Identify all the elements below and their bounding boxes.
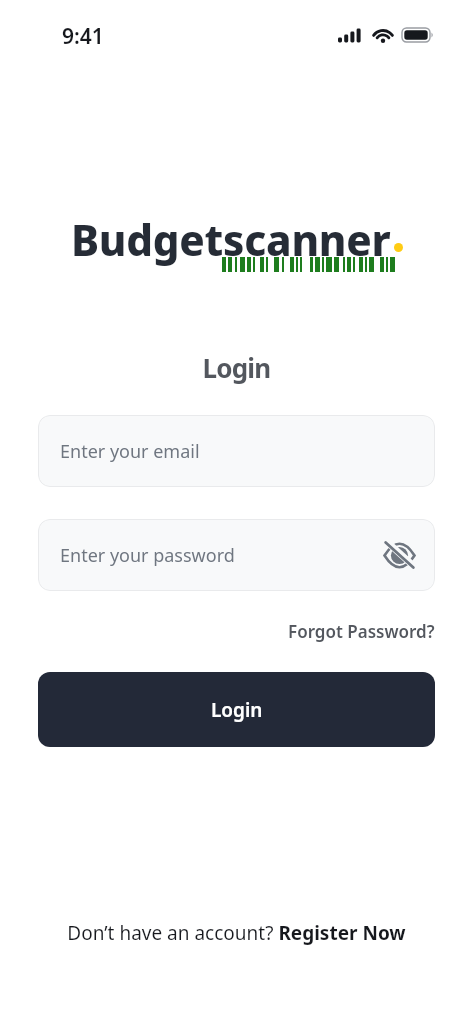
staticText: Enter your password <box>60 543 235 568</box>
staticText: Login <box>211 697 263 723</box>
staticText: Login <box>0 350 473 385</box>
button[interactable]: Enter your password <box>38 519 435 591</box>
staticText: Enter your email <box>60 439 200 464</box>
button[interactable]: Login <box>38 672 435 747</box>
button[interactable]: Enter your email <box>38 415 435 487</box>
staticText: 9:41 <box>62 22 104 51</box>
button[interactable]: Don’t have an account? Register Now <box>0 920 473 946</box>
button[interactable] <box>383 542 416 568</box>
button[interactable]: Forgot Password? <box>288 620 435 643</box>
staticText: Budgetscanner <box>71 211 391 268</box>
